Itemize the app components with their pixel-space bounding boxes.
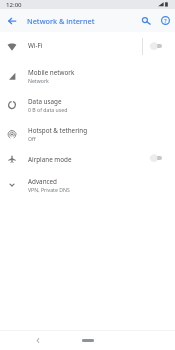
staticText: 0 B of data used — [28, 106, 68, 113]
staticText: Network & internet — [27, 16, 95, 26]
staticText: Network — [28, 77, 49, 84]
staticText: Advanced — [28, 177, 57, 186]
button[interactable]: Home — [82, 339, 94, 342]
staticText: Wi-Fi — [28, 41, 43, 50]
staticText: Data usage — [28, 97, 62, 106]
button[interactable]: Help — [157, 12, 174, 29]
button[interactable]: Data usage — [0, 90, 175, 119]
button[interactable]: Wi-Fi toggle — [146, 37, 168, 55]
button[interactable]: Search — [138, 12, 155, 29]
button[interactable]: Mobile network — [0, 61, 175, 90]
button[interactable]: Hotspot & tethering — [0, 119, 175, 148]
button[interactable]: Airplane mode toggle — [146, 149, 168, 167]
staticText: Hotspot & tethering — [28, 126, 88, 135]
button[interactable]: Back — [30, 332, 46, 348]
staticText: Airplane mode — [28, 155, 72, 164]
staticText: 12:00 — [6, 0, 22, 8]
button[interactable]: Navigate up — [3, 12, 20, 29]
button[interactable]: Wi-Fi — [0, 32, 175, 61]
staticText: Off — [28, 135, 36, 142]
staticText: VPN, Private DNS — [28, 186, 70, 193]
staticText: ? — [164, 17, 167, 25]
button[interactable]: Airplane mode — [0, 148, 175, 170]
staticText: Mobile network — [28, 68, 75, 77]
button[interactable]: Advanced — [0, 170, 175, 199]
